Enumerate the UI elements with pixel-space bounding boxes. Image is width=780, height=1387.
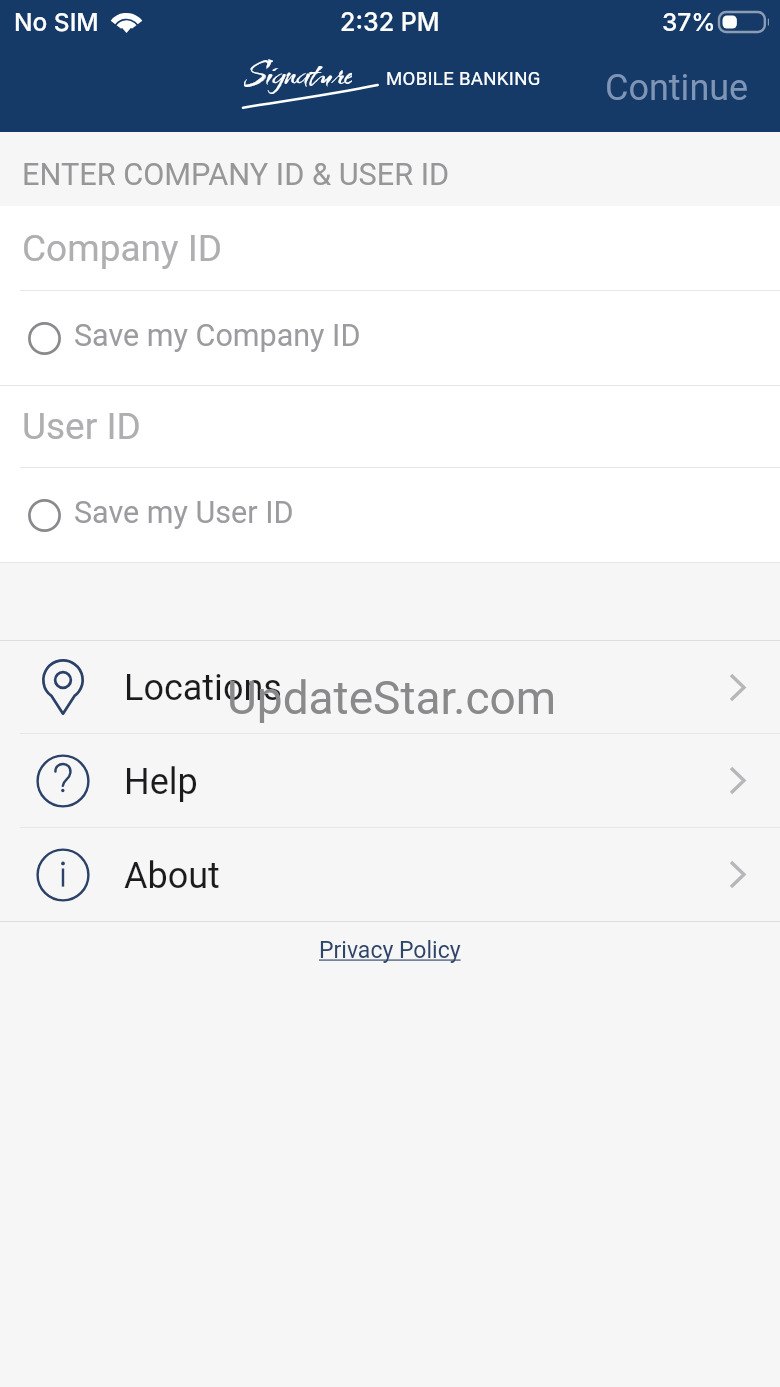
staticText: Company ID [22, 227, 222, 270]
staticText: UpdateStar.com [227, 671, 557, 725]
button[interactable]: Save my Company ID [0, 291, 780, 385]
button[interactable]: Locations [0, 641, 780, 733]
button[interactable]: User ID [0, 386, 780, 467]
staticText: Locations [124, 667, 282, 709]
other: Wi-Fi [110, 8, 143, 33]
staticText: Privacy Policy [319, 937, 461, 964]
staticText: Signature [244, 46, 352, 100]
staticText: ENTER COMPANY ID & USER ID [22, 157, 450, 193]
staticText: MOBILE BANKING [386, 68, 541, 90]
staticText: Save my Company ID [74, 318, 361, 354]
staticText: About [124, 855, 220, 897]
staticText: 37% [662, 7, 716, 37]
other: Battery 37 percent [718, 11, 770, 33]
button[interactable]: About [0, 828, 780, 921]
staticText: 2:32 PM [340, 7, 440, 37]
staticText: User ID [22, 405, 141, 448]
button[interactable]: Save my User ID [0, 468, 780, 562]
staticText: Save my User ID [74, 495, 294, 531]
button[interactable]: Continue [583, 53, 780, 123]
button[interactable]: Company ID [0, 206, 780, 290]
staticText: Help [124, 761, 198, 803]
button[interactable]: Privacy Policy [311, 933, 469, 968]
button[interactable]: Help [0, 734, 780, 827]
staticText: Continue [605, 67, 749, 109]
staticText: No SIM [14, 7, 99, 37]
